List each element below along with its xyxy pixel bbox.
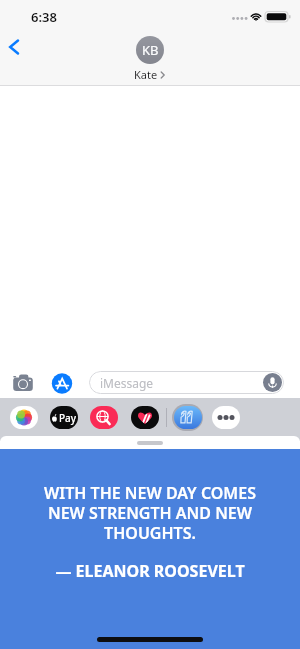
staticText: KB [142, 41, 159, 59]
button[interactable]: App Store [51, 372, 73, 394]
button[interactable]: Quotes [172, 404, 203, 431]
staticText: Pay [59, 411, 77, 425]
button[interactable]: Back [0, 32, 32, 64]
button[interactable]: Dictate [263, 373, 282, 392]
button[interactable]: Apple Pay [50, 406, 78, 429]
staticText: iMessage [100, 375, 154, 391]
button[interactable]: Images [90, 406, 118, 429]
button[interactable]: More apps [212, 406, 240, 429]
staticText: 6:38 [31, 8, 57, 26]
staticText: Kate [134, 67, 158, 82]
button[interactable]: KB [134, 36, 166, 82]
button[interactable]: Camera [11, 372, 37, 396]
button[interactable]: iMessage [89, 371, 284, 394]
staticText: WITH THE NEW DAY COMES NEW STRENGTH AND … [44, 482, 256, 543]
button[interactable]: Digital Touch [131, 406, 159, 429]
button[interactable]: Photos [10, 406, 38, 429]
staticText: — ELEANOR ROOSEVELT [55, 560, 245, 582]
